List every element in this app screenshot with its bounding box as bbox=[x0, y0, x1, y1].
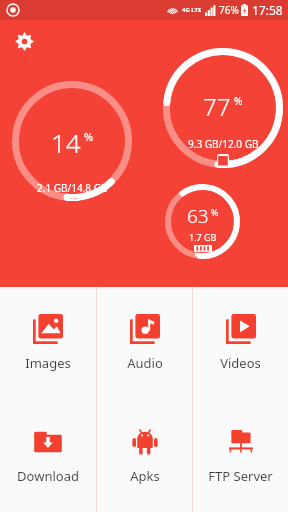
staticText: 17:58 bbox=[252, 2, 283, 18]
button[interactable]: Settings bbox=[13, 30, 35, 52]
staticText: Images bbox=[25, 354, 71, 372]
staticText: Apks bbox=[130, 467, 160, 485]
button[interactable]: Apks bbox=[97, 399, 192, 512]
staticText: 4G LTE bbox=[182, 6, 202, 14]
button[interactable]: Audio bbox=[97, 287, 192, 399]
staticText: 63 bbox=[187, 203, 209, 229]
button[interactable]: Internal storage 77 percent bbox=[163, 48, 283, 168]
staticText: Audio bbox=[127, 354, 163, 372]
staticText: 2.1 GB/14.8 GB bbox=[37, 181, 108, 195]
button[interactable]: FTP Server bbox=[193, 399, 288, 512]
staticText: 9.3 GB/12.0 GB bbox=[188, 137, 259, 151]
staticText: 76% bbox=[219, 3, 239, 17]
staticText: 77 bbox=[203, 90, 231, 123]
staticText: % bbox=[84, 129, 94, 144]
button[interactable]: Videos bbox=[193, 287, 288, 399]
staticText: Download bbox=[17, 467, 79, 485]
staticText: Videos bbox=[220, 354, 261, 372]
button[interactable]: SD card storage 14 percent bbox=[12, 81, 132, 201]
staticText: 1.7 GB bbox=[189, 231, 217, 243]
staticText: % bbox=[234, 94, 243, 108]
staticText: % bbox=[211, 206, 219, 218]
button[interactable]: Memory 63 percent bbox=[165, 184, 240, 259]
button[interactable]: Download bbox=[0, 399, 96, 512]
staticText: FTP Server bbox=[208, 467, 273, 485]
staticText: 14 bbox=[51, 125, 81, 160]
button[interactable]: Images bbox=[0, 287, 96, 399]
